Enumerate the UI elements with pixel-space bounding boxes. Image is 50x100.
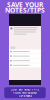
staticText: JUST TAP AND TYPE (11, 88, 38, 91)
staticText: TIPS HERE (18, 94, 31, 98)
staticText: YOUR NOTES AND (13, 91, 37, 94)
staticText: SAVE YOUR (7, 0, 43, 9)
staticText: NOTES/TIPS (5, 6, 45, 15)
